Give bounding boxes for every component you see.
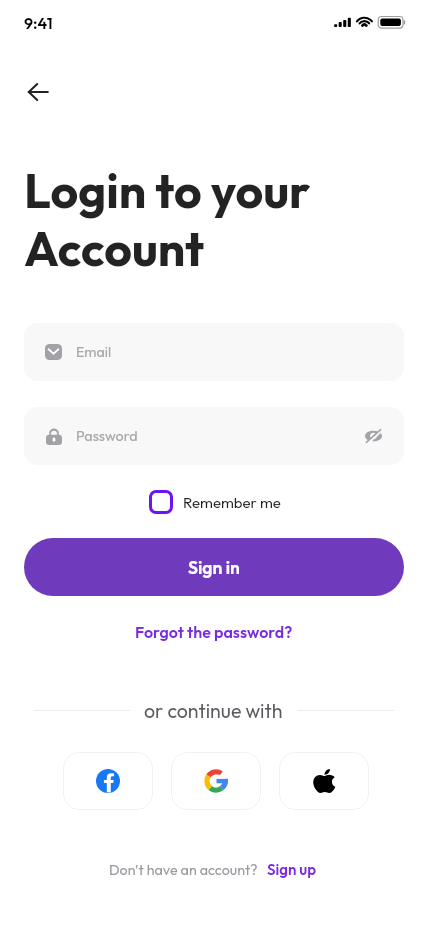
button[interactable]: Sign in with Facebook (63, 752, 153, 810)
staticText: Password (76, 427, 360, 445)
button[interactable]: Sign in with Apple (279, 752, 369, 810)
staticText: Sign in (188, 556, 240, 578)
staticText: Sign up (267, 860, 317, 879)
staticText: 9:41 (24, 13, 53, 33)
button[interactable]: Password (24, 407, 404, 465)
button[interactable]: Sign in with Google (171, 752, 261, 810)
button[interactable]: Sign up (265, 856, 319, 883)
staticText: Remember me (183, 493, 281, 512)
staticText: or continue with (144, 698, 283, 723)
staticText: Login to your Account (24, 160, 311, 279)
button[interactable]: Back (16, 70, 60, 114)
button[interactable]: Forgot the password? (127, 618, 301, 646)
staticText: Email (76, 343, 112, 361)
staticText: Don't have an account? (109, 861, 258, 879)
staticText: Forgot the password? (135, 622, 293, 642)
button[interactable]: Remember me (145, 486, 285, 518)
button[interactable]: Show password (360, 423, 386, 449)
button[interactable]: Email (24, 323, 404, 381)
button[interactable]: Sign in (24, 538, 404, 596)
